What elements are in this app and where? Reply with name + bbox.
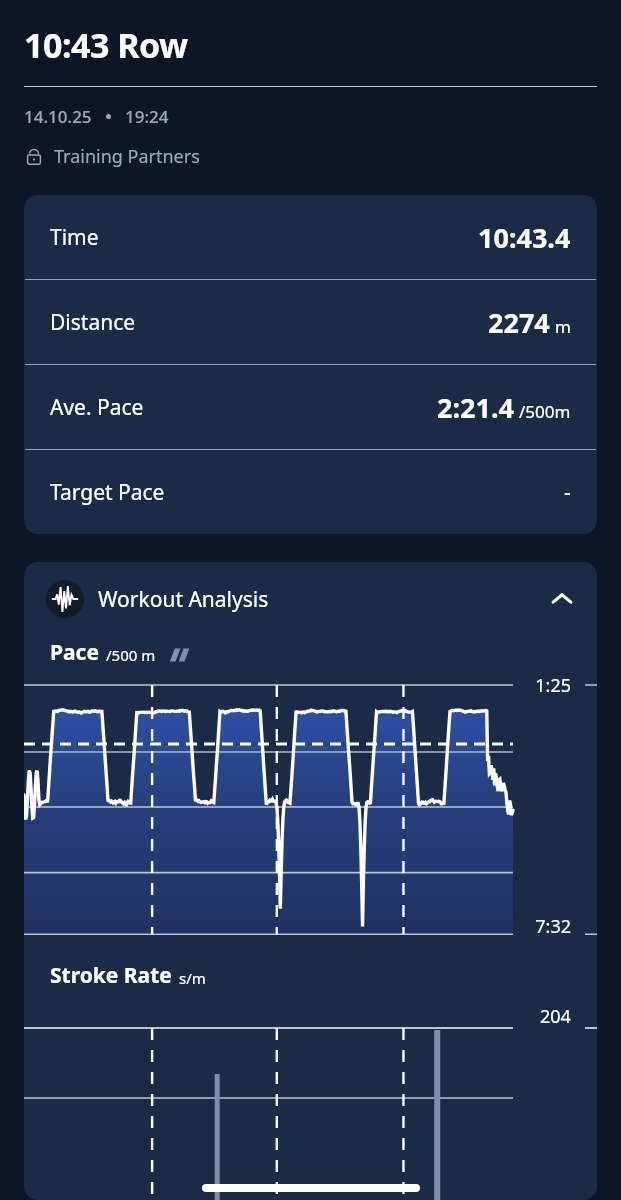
button[interactable]: Time bbox=[24, 195, 597, 279]
staticText: /500 m bbox=[106, 645, 156, 665]
staticText: 2274 bbox=[488, 304, 550, 341]
button[interactable]: Workout Analysis bbox=[24, 562, 597, 636]
staticText: s/m bbox=[179, 968, 206, 988]
staticText: - bbox=[564, 478, 571, 507]
staticText: Ave. Pace bbox=[50, 393, 144, 422]
staticText: 7:32 bbox=[535, 914, 571, 939]
staticText: /500m bbox=[519, 400, 571, 423]
staticText: 1:25 bbox=[535, 673, 571, 698]
staticText: 14.10.25 bbox=[24, 105, 92, 128]
staticText: Time bbox=[50, 223, 99, 252]
staticText: 2:21.4 bbox=[437, 389, 514, 426]
staticText: 204 bbox=[540, 1004, 571, 1029]
staticText: m bbox=[555, 315, 571, 338]
staticText: 19:24 bbox=[125, 105, 169, 128]
staticText: Pace bbox=[50, 638, 99, 667]
button[interactable]: Ave. Pace bbox=[24, 365, 597, 449]
staticText: Stroke Rate bbox=[50, 961, 172, 990]
staticText: Workout Analysis bbox=[98, 585, 269, 614]
button[interactable]: Target Pace bbox=[24, 450, 597, 534]
other: Collapse bbox=[549, 586, 575, 612]
button[interactable]: Distance bbox=[24, 280, 597, 364]
staticText: 10:43.4 bbox=[478, 219, 571, 256]
other: Private bbox=[24, 147, 44, 167]
staticText: Distance bbox=[50, 308, 136, 337]
staticText: 10:43 Row bbox=[24, 22, 188, 68]
staticText: Target Pace bbox=[50, 478, 165, 507]
button[interactable]: Private bbox=[24, 144, 200, 169]
staticText: Training Partners bbox=[54, 144, 200, 169]
